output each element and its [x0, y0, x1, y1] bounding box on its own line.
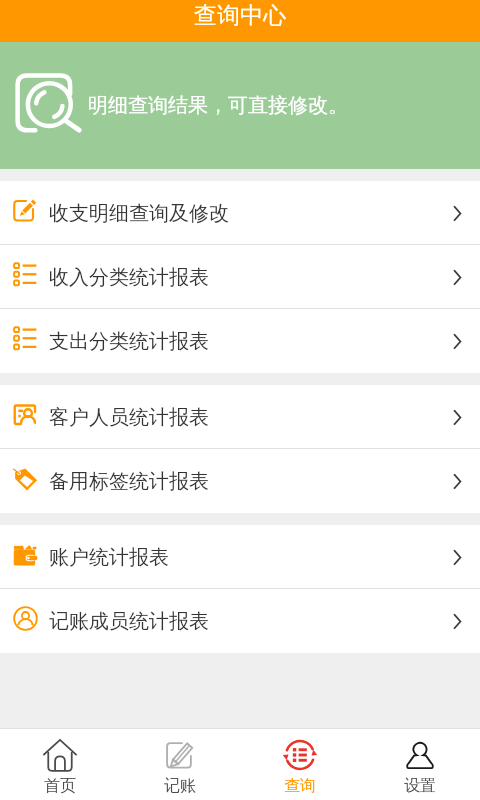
staticText: 查询中心: [194, 1, 286, 30]
button[interactable]: 记账成员统计报表: [0, 589, 480, 653]
button[interactable]: 客户人员统计报表: [0, 385, 480, 449]
button[interactable]: 账户统计报表: [0, 525, 480, 589]
button[interactable]: 支出分类统计报表: [0, 309, 480, 373]
button[interactable]: 设置: [360, 729, 480, 800]
button[interactable]: 查询: [240, 729, 360, 800]
staticText: 支出分类统计报表: [49, 329, 209, 354]
button[interactable]: 备用标签统计报表: [0, 449, 480, 513]
button[interactable]: 收支明细查询及修改: [0, 181, 480, 245]
staticText: 查询: [284, 776, 316, 796]
staticText: 备用标签统计报表: [49, 469, 209, 494]
staticText: 客户人员统计报表: [49, 405, 209, 430]
staticText: 设置: [404, 776, 436, 796]
button[interactable]: 记账: [120, 729, 240, 800]
staticText: 记账成员统计报表: [49, 609, 209, 634]
button[interactable]: 收入分类统计报表: [0, 245, 480, 309]
staticText: 记账: [164, 776, 196, 796]
staticText: 首页: [44, 776, 76, 796]
staticText: 收支明细查询及修改: [49, 201, 229, 226]
staticText: 账户统计报表: [49, 545, 169, 570]
staticText: 明细查询结果，可直接修改。: [88, 93, 348, 118]
button[interactable]: 首页: [0, 729, 120, 800]
staticText: 收入分类统计报表: [49, 265, 209, 290]
